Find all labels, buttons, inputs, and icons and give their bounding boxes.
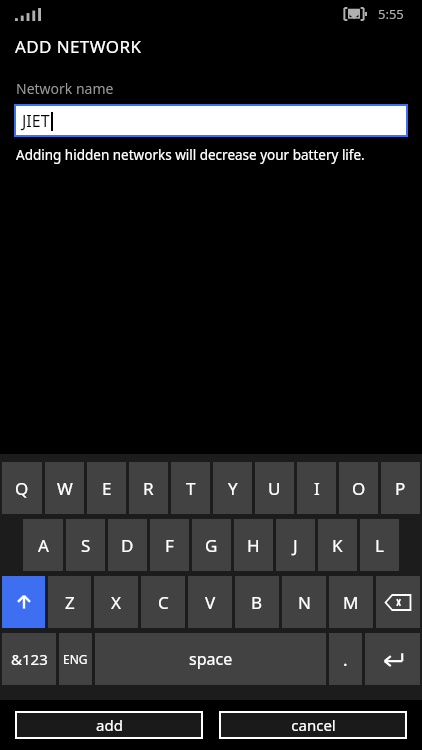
button[interactable]: Shift bbox=[2, 576, 45, 628]
button[interactable]: R bbox=[129, 462, 168, 514]
button[interactable]: &123 bbox=[2, 633, 56, 685]
staticText: W bbox=[57, 477, 73, 500]
button[interactable]: cancel bbox=[219, 711, 407, 739]
staticText: 5:55 bbox=[378, 5, 404, 23]
button[interactable]: M bbox=[329, 576, 373, 628]
button[interactable]: Q bbox=[2, 462, 42, 514]
button[interactable]: N bbox=[282, 576, 326, 628]
staticText: E bbox=[102, 477, 112, 500]
staticText: F bbox=[165, 534, 174, 557]
button[interactable]: S bbox=[66, 519, 105, 571]
button[interactable]: C bbox=[141, 576, 185, 628]
button[interactable]: O bbox=[339, 462, 378, 514]
staticText: B bbox=[251, 591, 263, 614]
staticText: Q bbox=[15, 477, 29, 500]
staticText: JIET bbox=[22, 110, 50, 132]
button[interactable]: Backspace bbox=[376, 576, 420, 628]
staticText: C bbox=[158, 591, 169, 614]
staticText: ADD NETWORK bbox=[15, 35, 142, 58]
staticText: Z bbox=[65, 591, 75, 614]
staticText: Network name bbox=[16, 79, 114, 98]
staticText: &123 bbox=[11, 649, 48, 669]
staticText: X bbox=[111, 591, 121, 614]
button[interactable]: E bbox=[87, 462, 126, 514]
staticText: S bbox=[81, 534, 91, 557]
button[interactable]: Z bbox=[48, 576, 91, 628]
staticText: H bbox=[247, 534, 260, 557]
button[interactable]: I bbox=[297, 462, 336, 514]
button[interactable]: B bbox=[235, 576, 279, 628]
staticText: R bbox=[143, 477, 154, 500]
staticText: O bbox=[352, 477, 366, 500]
staticText: cancel bbox=[291, 715, 336, 735]
staticText: space bbox=[189, 648, 233, 670]
staticText: Y bbox=[228, 477, 238, 500]
button[interactable]: ENG bbox=[59, 633, 92, 685]
button[interactable]: X bbox=[94, 576, 138, 628]
button[interactable]: . bbox=[329, 633, 362, 685]
button[interactable]: G bbox=[192, 519, 231, 571]
staticText: V bbox=[205, 591, 216, 614]
staticText: A bbox=[38, 534, 49, 557]
button[interactable]: U bbox=[255, 462, 294, 514]
button[interactable]: D bbox=[108, 519, 147, 571]
button[interactable]: add bbox=[15, 711, 203, 739]
staticText: M bbox=[343, 591, 359, 614]
button[interactable]: T bbox=[171, 462, 210, 514]
button[interactable]: V bbox=[188, 576, 232, 628]
button[interactable]: K bbox=[318, 519, 357, 571]
staticText: I bbox=[314, 477, 320, 500]
button[interactable]: P bbox=[381, 462, 420, 514]
staticText: J bbox=[293, 534, 298, 557]
staticText: add bbox=[96, 715, 123, 735]
staticText: G bbox=[205, 534, 218, 557]
staticText: N bbox=[298, 591, 311, 614]
staticText: U bbox=[268, 477, 281, 500]
staticText: D bbox=[121, 534, 134, 557]
staticText: K bbox=[332, 534, 343, 557]
staticText: . bbox=[343, 648, 348, 671]
button[interactable]: A bbox=[23, 519, 63, 571]
staticText: Adding hidden networks will decrease you… bbox=[16, 146, 365, 164]
staticText: ENG bbox=[63, 651, 88, 667]
staticText: T bbox=[186, 477, 196, 500]
staticText: P bbox=[395, 477, 406, 500]
button[interactable]: space bbox=[95, 633, 326, 685]
button[interactable]: H bbox=[234, 519, 273, 571]
button[interactable]: JIET bbox=[14, 104, 408, 137]
button[interactable]: W bbox=[45, 462, 84, 514]
button[interactable]: F bbox=[150, 519, 189, 571]
button[interactable]: Enter bbox=[365, 633, 420, 685]
button[interactable]: L bbox=[360, 519, 399, 571]
staticText: L bbox=[375, 534, 384, 557]
button[interactable]: J bbox=[276, 519, 315, 571]
button[interactable]: Y bbox=[213, 462, 252, 514]
